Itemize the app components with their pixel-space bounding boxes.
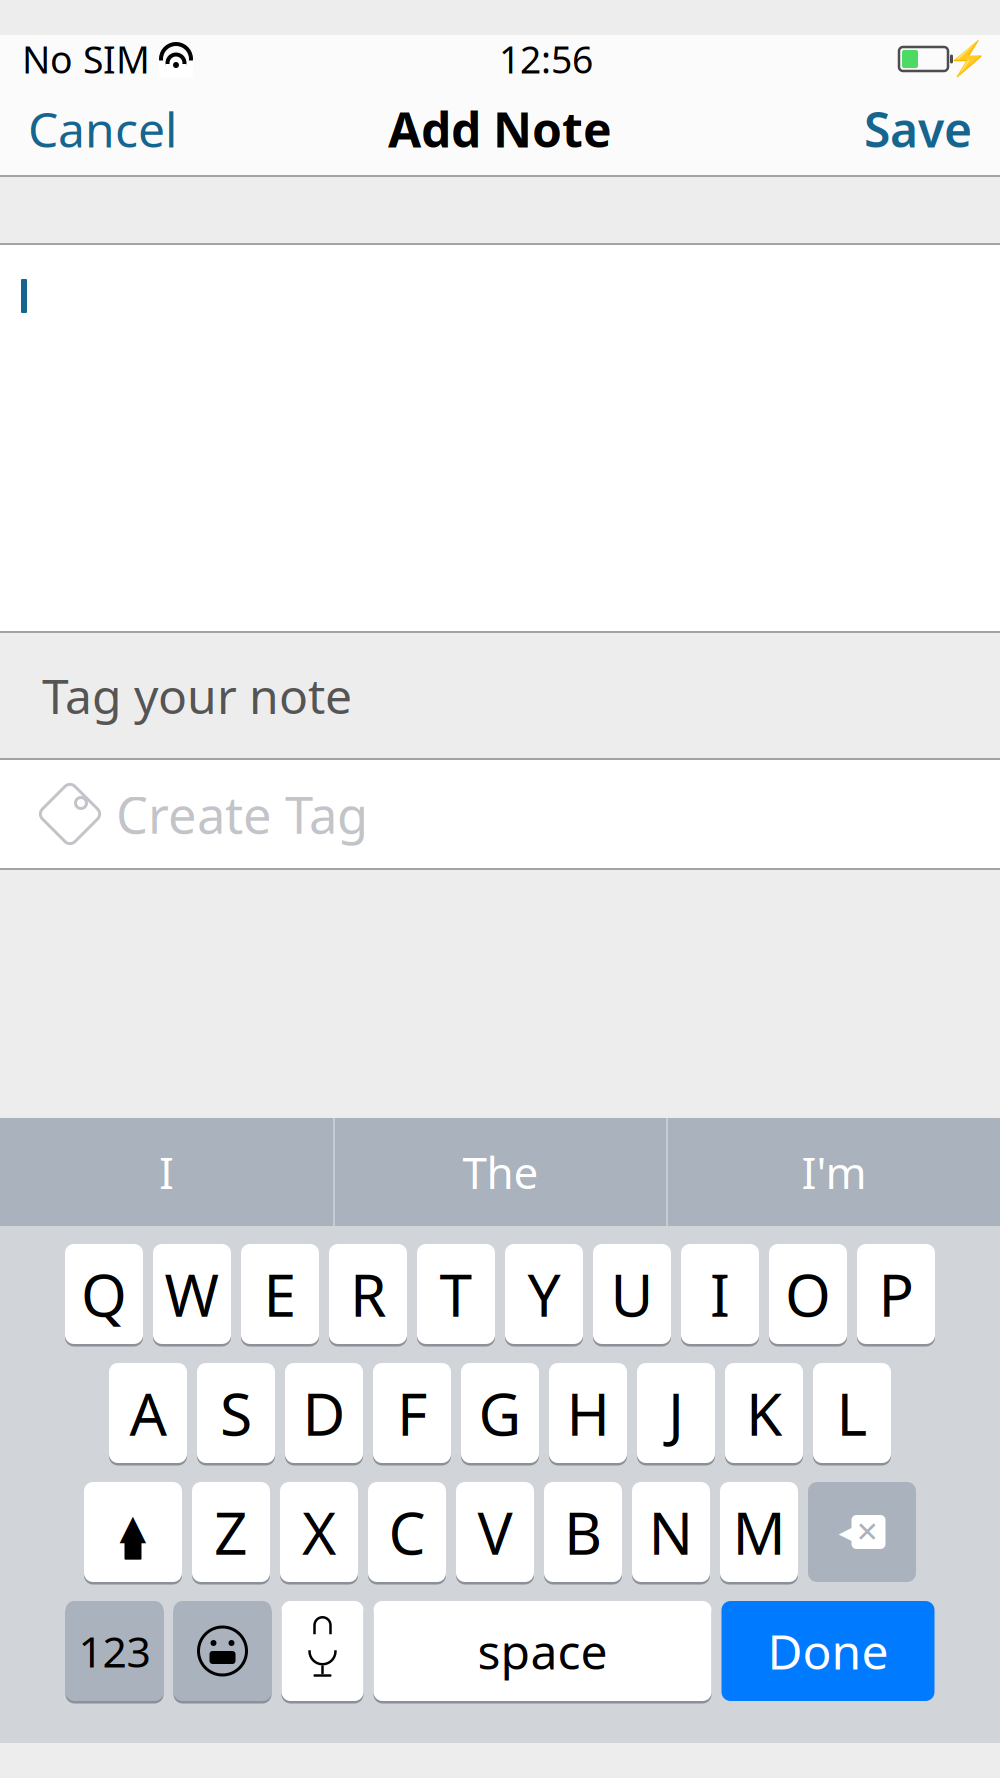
staticText: B — [564, 1493, 602, 1571]
staticText: S — [220, 1374, 252, 1452]
staticText: O — [785, 1255, 831, 1333]
button[interactable]: B — [544, 1480, 622, 1584]
button[interactable]: The — [335, 1118, 666, 1226]
staticText: T — [439, 1255, 472, 1333]
staticText: Add Note — [388, 97, 612, 161]
button[interactable]: Cancel — [0, 83, 205, 175]
button[interactable]: Z — [192, 1480, 270, 1584]
staticText: ▲ — [119, 1507, 146, 1547]
staticText: 123 — [78, 1623, 150, 1679]
button[interactable]: F — [373, 1361, 451, 1465]
button[interactable]: I — [0, 1118, 333, 1226]
button[interactable]: Q — [65, 1242, 143, 1346]
button[interactable]: Save — [836, 83, 1000, 175]
button[interactable]: M — [720, 1480, 798, 1584]
button[interactable]: T — [417, 1242, 495, 1346]
button[interactable]: G — [461, 1361, 539, 1465]
button[interactable]: Shift — [84, 1480, 182, 1584]
button[interactable]: X — [280, 1480, 358, 1584]
staticText: ⚡ — [947, 40, 989, 78]
button[interactable]: K — [725, 1361, 803, 1465]
button[interactable]: Emoji — [173, 1599, 271, 1703]
staticText: No SIM — [22, 34, 150, 84]
button[interactable]: S — [197, 1361, 275, 1465]
button[interactable]: V — [456, 1480, 534, 1584]
staticText: I — [159, 1143, 174, 1201]
button[interactable]: I — [681, 1242, 759, 1346]
button[interactable]: E — [241, 1242, 319, 1346]
staticText: K — [746, 1374, 782, 1452]
staticText: Cancel — [28, 97, 177, 161]
staticText: A — [129, 1374, 166, 1452]
button[interactable]: Y — [505, 1242, 583, 1346]
button[interactable]: C — [368, 1480, 446, 1584]
staticText: F — [397, 1374, 427, 1452]
staticText: ◀ — [838, 1516, 860, 1548]
staticText: space — [477, 1619, 607, 1683]
button[interactable]: D — [285, 1361, 363, 1465]
button[interactable]: I'm — [668, 1118, 1000, 1226]
staticText: Done — [767, 1619, 888, 1683]
button[interactable]: Create Tag — [0, 760, 1000, 868]
button[interactable]: U — [593, 1242, 671, 1346]
staticText: V — [477, 1493, 512, 1571]
staticText: E — [263, 1255, 296, 1333]
staticText: 12:56 — [499, 34, 593, 84]
staticText: M — [732, 1493, 785, 1571]
staticText: Tag your note — [42, 664, 352, 727]
staticText: D — [302, 1374, 345, 1452]
button[interactable]: J — [637, 1361, 715, 1465]
button[interactable]: H — [549, 1361, 627, 1465]
button[interactable]: space — [373, 1599, 711, 1703]
button[interactable]: L — [813, 1361, 891, 1465]
staticText: Y — [527, 1255, 560, 1333]
staticText: U — [610, 1255, 653, 1333]
button[interactable]: Dictate — [281, 1599, 363, 1703]
staticText: C — [388, 1493, 425, 1571]
staticText: Q — [81, 1255, 127, 1333]
staticText: P — [878, 1255, 913, 1333]
button[interactable]: O — [769, 1242, 847, 1346]
staticText: L — [836, 1374, 867, 1452]
staticText: The — [462, 1143, 538, 1201]
button[interactable]: N — [632, 1480, 710, 1584]
staticText: J — [668, 1374, 684, 1452]
button[interactable]: P — [857, 1242, 935, 1346]
staticText: I — [710, 1255, 730, 1333]
staticText: H — [566, 1374, 609, 1452]
staticText: R — [350, 1255, 386, 1333]
staticText: X — [302, 1493, 336, 1571]
staticText: W — [164, 1255, 219, 1333]
button[interactable]: Done — [721, 1599, 934, 1703]
button[interactable]: Delete — [808, 1480, 916, 1584]
staticText: Save — [864, 97, 972, 161]
button[interactable]: A — [109, 1361, 187, 1465]
button[interactable]: R — [329, 1242, 407, 1346]
staticText: Z — [214, 1493, 248, 1571]
staticText: I'm — [801, 1143, 866, 1201]
staticText: ✕ — [855, 1516, 878, 1548]
staticText: G — [478, 1374, 521, 1452]
staticText: N — [648, 1493, 693, 1571]
staticText: Create Tag — [116, 780, 368, 848]
button[interactable]: 123 — [65, 1599, 163, 1703]
button[interactable]: W — [153, 1242, 231, 1346]
